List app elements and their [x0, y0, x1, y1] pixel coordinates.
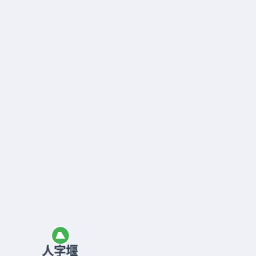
staticText: 人字堰 — [42, 242, 79, 256]
button[interactable]: 人字堰 — [42, 225, 79, 256]
staticText: 人字堰 — [42, 242, 79, 256]
staticText: 人字堰 — [42, 242, 79, 256]
